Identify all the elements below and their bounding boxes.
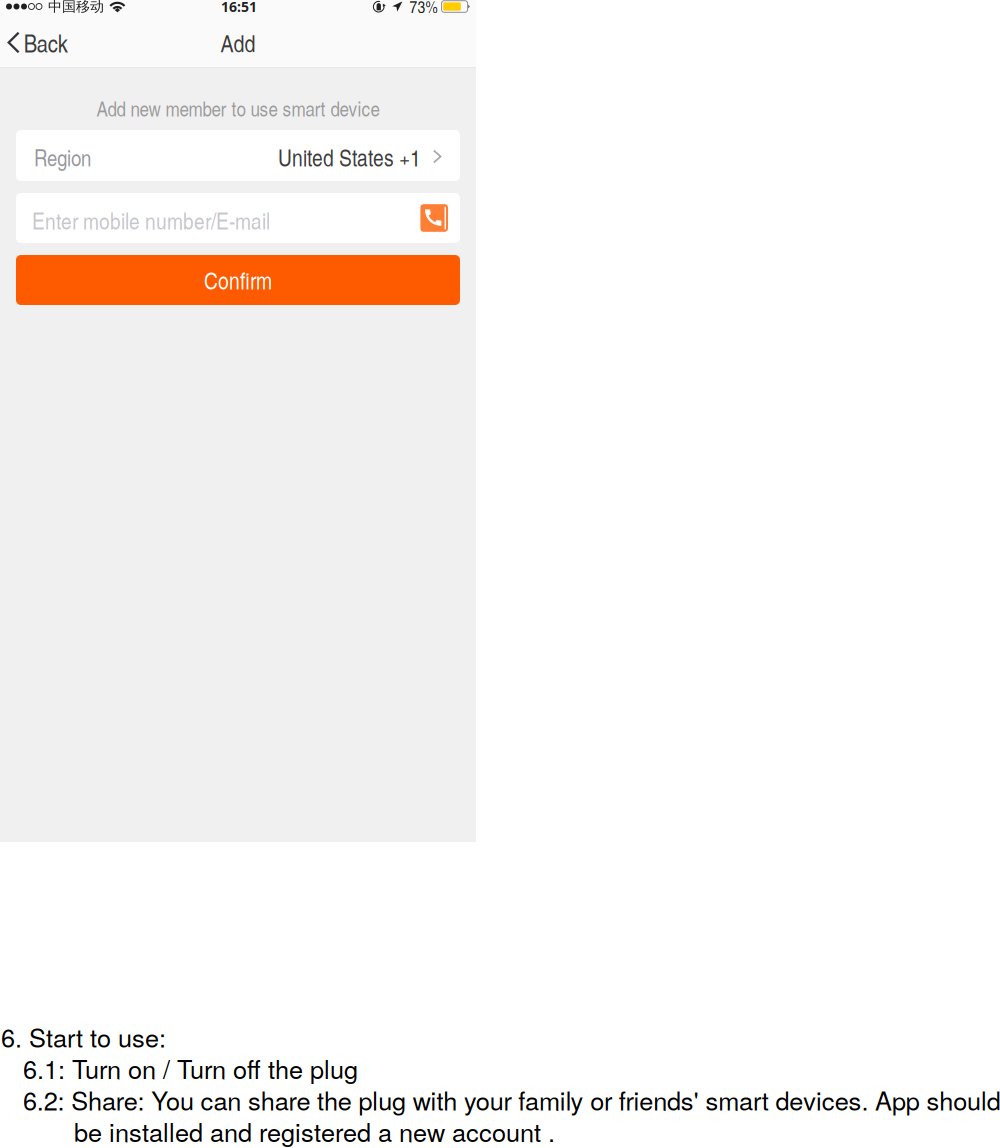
staticText: Region <box>34 141 91 173</box>
button[interactable]: Choose from contacts <box>420 204 448 232</box>
button[interactable]: Enter mobile number/E-mail <box>16 193 460 243</box>
button[interactable]: Back <box>0 13 79 68</box>
staticText: Add <box>220 26 255 59</box>
staticText: Confirm <box>204 264 272 296</box>
staticText: Back <box>24 26 68 59</box>
button[interactable]: Region <box>16 130 460 181</box>
staticText: 16:51 <box>221 0 257 16</box>
staticText: 73% <box>410 0 438 18</box>
staticText: be installed and registered a new accoun… <box>74 1113 555 1148</box>
staticText: 6.1: Turn on / Turn off the plug <box>23 1050 358 1086</box>
button[interactable]: Confirm <box>16 255 460 305</box>
staticText: 中国移动 <box>48 0 104 15</box>
staticText: 6.2: Share: You can share the plug with … <box>23 1081 1000 1118</box>
staticText: United States +1 <box>278 141 421 173</box>
staticText: 6. Start to use: <box>1 1018 166 1055</box>
staticText: Enter mobile number/E-mail <box>32 204 270 236</box>
staticText: Add new member to use smart device <box>96 94 379 122</box>
